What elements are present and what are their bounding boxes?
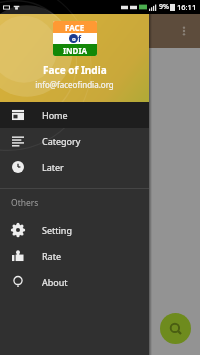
staticText: Home — [42, 109, 68, 121]
staticText: Rate — [42, 250, 61, 262]
staticText: 9% — [159, 2, 169, 12]
button[interactable]: Home — [0, 102, 149, 128]
staticText: Later — [42, 161, 64, 173]
staticText: f — [78, 33, 82, 44]
staticText: Setting — [42, 224, 72, 236]
button[interactable]: Rate — [0, 243, 149, 269]
staticText: info@faceofindia.org — [35, 79, 114, 90]
staticText: About — [42, 276, 68, 288]
staticText: 16:11 — [177, 2, 197, 12]
staticText: FACE — [65, 22, 85, 33]
button[interactable]: Category — [0, 128, 149, 154]
button[interactable]: About — [0, 269, 149, 295]
staticText: then start — [6, 71, 49, 83]
staticText: Others — [11, 197, 39, 209]
button[interactable]: More options — [175, 22, 193, 40]
button[interactable]: Later — [0, 154, 149, 180]
staticText: Category — [42, 135, 81, 147]
staticText: o — [72, 35, 76, 43]
button[interactable]: Search — [160, 313, 191, 344]
staticText: INDIA — [63, 45, 88, 56]
staticText: Face of India — [43, 63, 107, 77]
staticText: his is your — [6, 56, 50, 68]
button[interactable]: Setting — [0, 217, 149, 243]
